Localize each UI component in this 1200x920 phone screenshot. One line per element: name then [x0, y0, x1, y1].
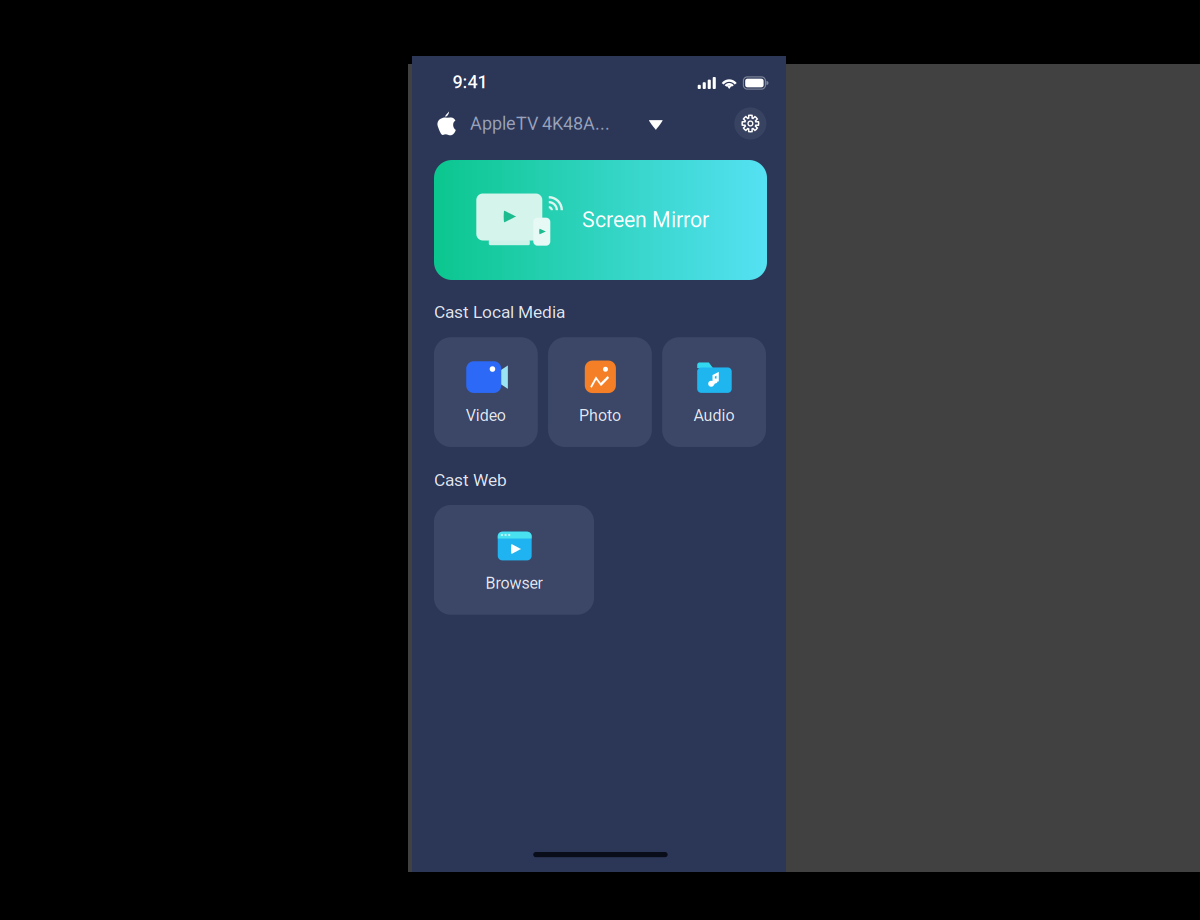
- button[interactable]: Photo: [548, 337, 652, 447]
- staticText: Video: [466, 406, 506, 425]
- staticText: AppleTV 4K48A...: [470, 113, 610, 134]
- staticText: Screen Mirror: [582, 207, 709, 232]
- button[interactable]: Audio: [662, 337, 766, 447]
- staticText: 9:41: [453, 72, 488, 93]
- button[interactable]: Settings: [734, 107, 766, 139]
- staticText: Audio: [694, 406, 735, 425]
- button[interactable]: Video: [434, 337, 538, 447]
- staticText: Photo: [579, 406, 621, 425]
- button[interactable]: Browser: [434, 505, 594, 615]
- button[interactable]: Screen Mirror: [434, 160, 767, 280]
- staticText: Cast Web: [434, 470, 507, 490]
- button[interactable]: AppleTV 4K48A...: [435, 103, 691, 143]
- staticText: Cast Local Media: [434, 302, 565, 322]
- staticText: Browser: [485, 574, 542, 593]
